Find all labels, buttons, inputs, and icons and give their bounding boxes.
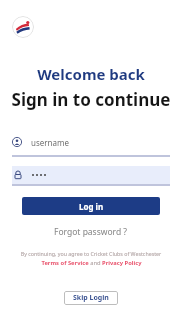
button[interactable]: Skip Login	[64, 291, 118, 305]
staticText: Log in	[79, 201, 104, 212]
button[interactable]: Terms of Service and Privacy Policy	[0, 259, 182, 267]
staticText: username	[31, 137, 70, 148]
button[interactable]	[12, 166, 170, 186]
staticText: Welcome back	[0, 64, 182, 84]
staticText: Terms of Service and Privacy Policy	[41, 259, 142, 267]
staticText: Skip Login	[73, 293, 109, 303]
staticText: By continuing, you agree to Cricket Club…	[0, 250, 182, 257]
other: Cricket Clubs of Westchester logo	[12, 16, 34, 38]
staticText: Forgot password ?	[54, 226, 128, 238]
button[interactable]: Log in	[22, 197, 160, 215]
button[interactable]: Forgot password ?	[0, 226, 182, 238]
button[interactable]: username	[12, 133, 170, 157]
staticText: Sign in to continue	[0, 88, 182, 111]
